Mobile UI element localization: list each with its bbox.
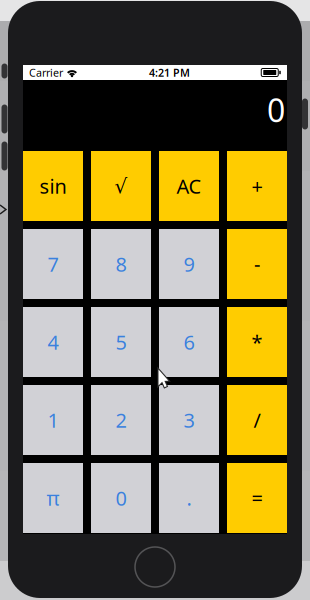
staticText: 4 — [47, 329, 58, 355]
staticText: 1 — [47, 407, 58, 433]
button[interactable]: * — [227, 307, 287, 377]
button[interactable]: 7 — [23, 229, 83, 299]
button[interactable]: 3 — [159, 385, 219, 455]
button[interactable]: / — [227, 385, 287, 455]
button[interactable]: 6 — [159, 307, 219, 377]
staticText: 4:21 PM — [149, 65, 190, 80]
button[interactable]: sin — [23, 151, 83, 221]
staticText: 3 — [183, 407, 194, 433]
staticText: π — [46, 485, 59, 511]
staticText: AC — [176, 173, 201, 199]
button[interactable]: . — [159, 463, 219, 533]
staticText: 9 — [183, 251, 194, 277]
button[interactable]: 4 — [23, 307, 83, 377]
button[interactable]: √ — [91, 151, 151, 221]
button[interactable]: 0 — [91, 463, 151, 533]
button[interactable]: - — [227, 229, 287, 299]
staticText: 7 — [47, 251, 58, 277]
staticText: 2 — [115, 407, 126, 433]
button[interactable]: π — [23, 463, 83, 533]
staticText: 8 — [115, 251, 126, 277]
staticText: - — [254, 251, 260, 277]
staticText: Carrier — [29, 65, 63, 80]
staticText: 0 — [115, 485, 126, 511]
staticText: * — [251, 329, 262, 355]
staticText: + — [251, 173, 262, 199]
staticText: 5 — [115, 329, 126, 355]
button[interactable]: 9 — [159, 229, 219, 299]
staticText: . — [186, 485, 191, 511]
staticText: 6 — [183, 329, 194, 355]
staticText: √ — [114, 175, 127, 197]
staticText: 0 — [267, 88, 285, 131]
button[interactable]: + — [227, 151, 287, 221]
button[interactable]: 5 — [91, 307, 151, 377]
button[interactable]: = — [227, 463, 287, 533]
button[interactable]: AC — [159, 151, 219, 221]
button[interactable]: 2 — [91, 385, 151, 455]
staticText: / — [253, 407, 260, 433]
button[interactable]: 1 — [23, 385, 83, 455]
button[interactable]: 8 — [91, 229, 151, 299]
staticText: = — [251, 485, 262, 511]
staticText: sin — [39, 173, 66, 199]
